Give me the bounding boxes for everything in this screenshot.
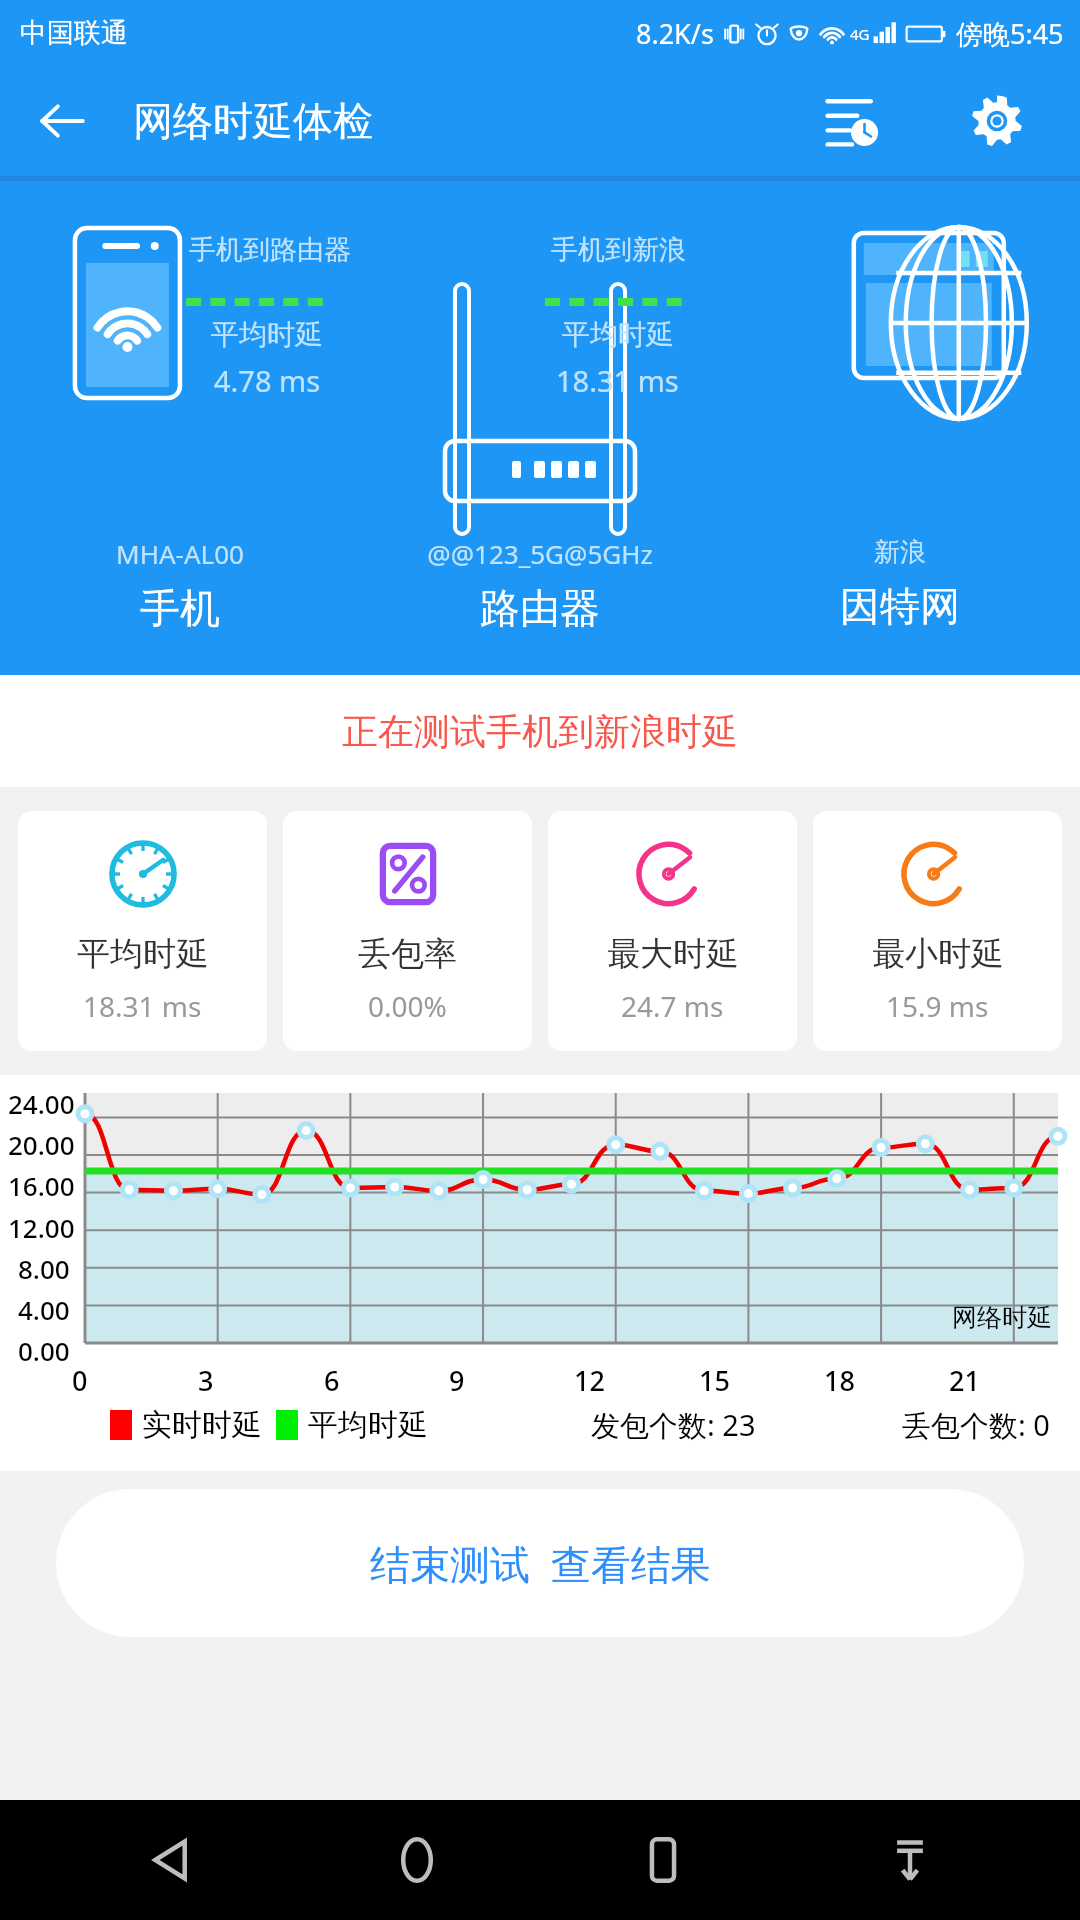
staticText: 发包个数: 23	[591, 1405, 756, 1445]
staticText: 3	[198, 1362, 214, 1399]
button[interactable]: 最大时延	[548, 811, 797, 1051]
staticText: 实时时延	[142, 1406, 262, 1444]
staticText: 24.7 ms	[621, 987, 724, 1025]
staticText: MHA-AL00	[116, 536, 244, 571]
staticText: 18	[824, 1362, 855, 1399]
staticText: 丢包个数: 0	[902, 1405, 1050, 1445]
staticText: 丢包率	[358, 933, 457, 975]
staticText: 24.00	[8, 1086, 75, 1121]
staticText: 12.00	[8, 1210, 75, 1245]
staticText: 平均时延	[562, 317, 674, 352]
button[interactable]: 最小时延	[813, 811, 1062, 1051]
staticText: 8.00	[18, 1251, 70, 1286]
button[interactable]: 丢包率	[283, 811, 532, 1051]
button[interactable]: 结束测试 查看结果	[56, 1489, 1024, 1637]
button[interactable]: Hide navigation bar	[870, 1820, 950, 1900]
button[interactable]: Recent apps	[623, 1820, 703, 1900]
button[interactable]: Back	[30, 89, 94, 153]
staticText: 网络时延	[952, 1302, 1052, 1333]
staticText: 8.2K/s	[636, 15, 714, 52]
staticText: 正在测试手机到新浪时延	[342, 709, 738, 754]
button[interactable]: Settings	[958, 82, 1036, 160]
staticText: 最小时延	[872, 933, 1004, 975]
button[interactable]: History	[812, 82, 890, 160]
staticText: 20.00	[8, 1127, 75, 1162]
staticText: 6	[324, 1362, 340, 1399]
staticText: 手机到路由器	[189, 233, 351, 267]
staticText: 0.00%	[368, 987, 447, 1025]
staticText: 中国联通	[20, 16, 128, 50]
staticText: 网络时延体检	[133, 96, 373, 146]
staticText: 路由器	[480, 583, 600, 633]
staticText: 结束测试 查看结果	[370, 1536, 711, 1591]
staticText: 16.00	[8, 1168, 75, 1203]
staticText: 12	[574, 1362, 605, 1399]
staticText: 平均时延	[211, 317, 323, 352]
staticText: 手机	[140, 583, 220, 633]
staticText: 18.31 ms	[556, 361, 679, 400]
staticText: 4.78 ms	[214, 361, 321, 400]
staticText: 15	[699, 1362, 730, 1399]
staticText: 最大时延	[607, 933, 739, 975]
staticText: 手机到新浪	[551, 233, 686, 267]
staticText: 平均时延	[308, 1406, 428, 1444]
staticText: 15.9 ms	[886, 987, 989, 1025]
staticText: 新浪	[874, 536, 926, 569]
staticText: 4G	[850, 24, 870, 44]
staticText: @@123_5G@5GHz	[427, 536, 653, 571]
staticText: 21	[949, 1362, 980, 1399]
staticText: 平均时延	[77, 933, 209, 975]
staticText: 0.00	[18, 1333, 70, 1368]
staticText: 18.31 ms	[83, 987, 202, 1025]
staticText: 傍晚5:45	[956, 15, 1064, 52]
staticText: 因特网	[840, 581, 960, 631]
staticText: 9	[449, 1362, 465, 1399]
button[interactable]: 平均时延	[18, 811, 267, 1051]
staticText: 4.00	[18, 1292, 70, 1327]
button[interactable]: Back	[130, 1820, 210, 1900]
staticText: 0	[72, 1362, 88, 1399]
button[interactable]: Home	[377, 1820, 457, 1900]
